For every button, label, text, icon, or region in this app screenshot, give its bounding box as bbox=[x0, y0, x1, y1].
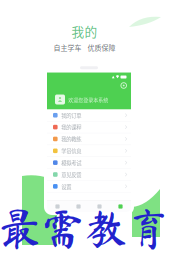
staticText: 自主学车 优质保障 bbox=[53, 42, 115, 52]
button[interactable]: 我的订单 bbox=[47, 109, 131, 121]
button[interactable]: 设置 bbox=[120, 82, 127, 89]
staticText: 我的订单 bbox=[61, 111, 81, 119]
staticText: 学员信息 bbox=[61, 147, 81, 155]
staticText: 我的教练 bbox=[61, 135, 81, 143]
button[interactable]: Tab 3 bbox=[89, 201, 110, 212]
button[interactable]: 欢迎您登录本系统 bbox=[47, 89, 131, 109]
button[interactable]: 意见反馈 bbox=[47, 169, 131, 181]
staticText: 我的课程 bbox=[61, 123, 81, 131]
button[interactable]: 设置 bbox=[47, 181, 131, 192]
button[interactable]: Tab 4 bbox=[110, 201, 131, 212]
button[interactable]: 我的课程 bbox=[47, 121, 131, 133]
staticText: 模拟考试 bbox=[61, 159, 81, 166]
button[interactable]: 模拟考试 bbox=[47, 157, 131, 169]
staticText: 意见反馈 bbox=[61, 171, 81, 178]
staticText: 设置 bbox=[61, 182, 71, 190]
button[interactable]: Tab 2 bbox=[68, 201, 89, 212]
staticText: 欢迎您登录本系统 bbox=[68, 96, 108, 103]
button[interactable]: 我的教练 bbox=[47, 133, 131, 145]
staticText: 最需教育 bbox=[0, 207, 169, 250]
staticText: 我的 bbox=[71, 22, 97, 40]
button[interactable]: Tab 1 bbox=[47, 201, 68, 212]
button[interactable]: 学员信息 bbox=[47, 145, 131, 157]
